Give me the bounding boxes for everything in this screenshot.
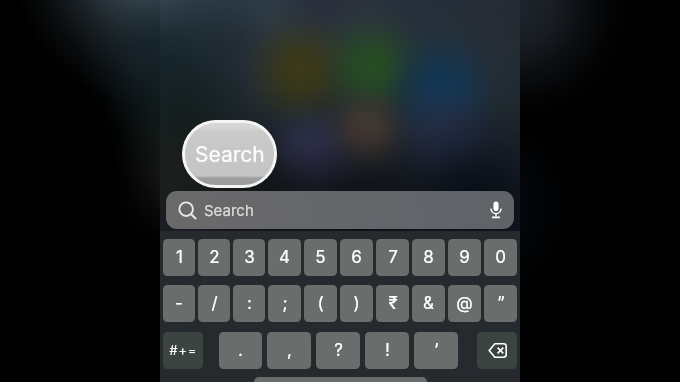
staticText: : <box>247 293 252 314</box>
staticText: ) <box>353 293 360 314</box>
button[interactable]: 4 <box>268 239 301 276</box>
button[interactable]: & <box>412 285 445 322</box>
staticText: & <box>423 293 434 314</box>
button[interactable]: ” <box>484 285 517 322</box>
staticText: ! <box>385 340 390 361</box>
staticText: 0 <box>495 247 506 268</box>
button[interactable]: - <box>163 285 195 322</box>
button[interactable]: , <box>267 332 311 369</box>
button[interactable]: Search <box>166 191 514 229</box>
staticText: ? <box>334 340 343 361</box>
button[interactable]: ! <box>365 332 409 369</box>
staticText: - <box>175 293 183 314</box>
button[interactable]: 0 <box>484 239 517 276</box>
button[interactable]: / <box>198 285 230 322</box>
button[interactable]: @ <box>448 285 481 322</box>
button[interactable]: #+= <box>163 332 203 369</box>
staticText: . <box>238 340 243 361</box>
staticText: #+= <box>169 343 198 358</box>
button[interactable]: 2 <box>198 239 230 276</box>
button[interactable]: . <box>219 332 262 369</box>
other: Voice search <box>490 201 502 219</box>
button[interactable]: 9 <box>448 239 481 276</box>
staticText: ₹ <box>388 293 398 314</box>
staticText: 2 <box>209 247 220 268</box>
button[interactable]: ’ <box>414 332 458 369</box>
staticText: 7 <box>388 247 398 268</box>
staticText: @ <box>456 293 473 314</box>
button[interactable]: 1 <box>163 239 195 276</box>
staticText: 3 <box>244 247 255 268</box>
button[interactable]: 7 <box>376 239 409 276</box>
button[interactable]: : <box>233 285 265 322</box>
staticText: 1 <box>176 247 183 268</box>
staticText: Search <box>204 201 254 219</box>
button[interactable]: ) <box>340 285 373 322</box>
button[interactable]: ( <box>304 285 337 322</box>
staticText: ; <box>282 293 288 314</box>
button[interactable]: 6 <box>340 239 373 276</box>
button[interactable]: Search <box>182 120 277 188</box>
button[interactable]: space <box>254 377 427 382</box>
staticText: Search <box>195 142 265 167</box>
staticText: ’ <box>434 340 439 361</box>
button[interactable]: 5 <box>304 239 337 276</box>
button[interactable]: 8 <box>412 239 445 276</box>
staticText: ( <box>317 293 324 314</box>
staticText: 5 <box>315 247 326 268</box>
staticText: , <box>287 340 292 361</box>
button[interactable]: ; <box>268 285 301 322</box>
staticText: / <box>211 293 218 314</box>
button[interactable]: ₹ <box>376 285 409 322</box>
staticText: 4 <box>279 247 290 268</box>
button[interactable]: 3 <box>233 239 265 276</box>
staticText: 8 <box>423 247 434 268</box>
button[interactable]: ? <box>316 332 360 369</box>
staticText: 6 <box>351 247 362 268</box>
staticText: 9 <box>459 247 470 268</box>
button[interactable]: Backspace <box>477 332 517 369</box>
staticText: ” <box>497 293 505 314</box>
